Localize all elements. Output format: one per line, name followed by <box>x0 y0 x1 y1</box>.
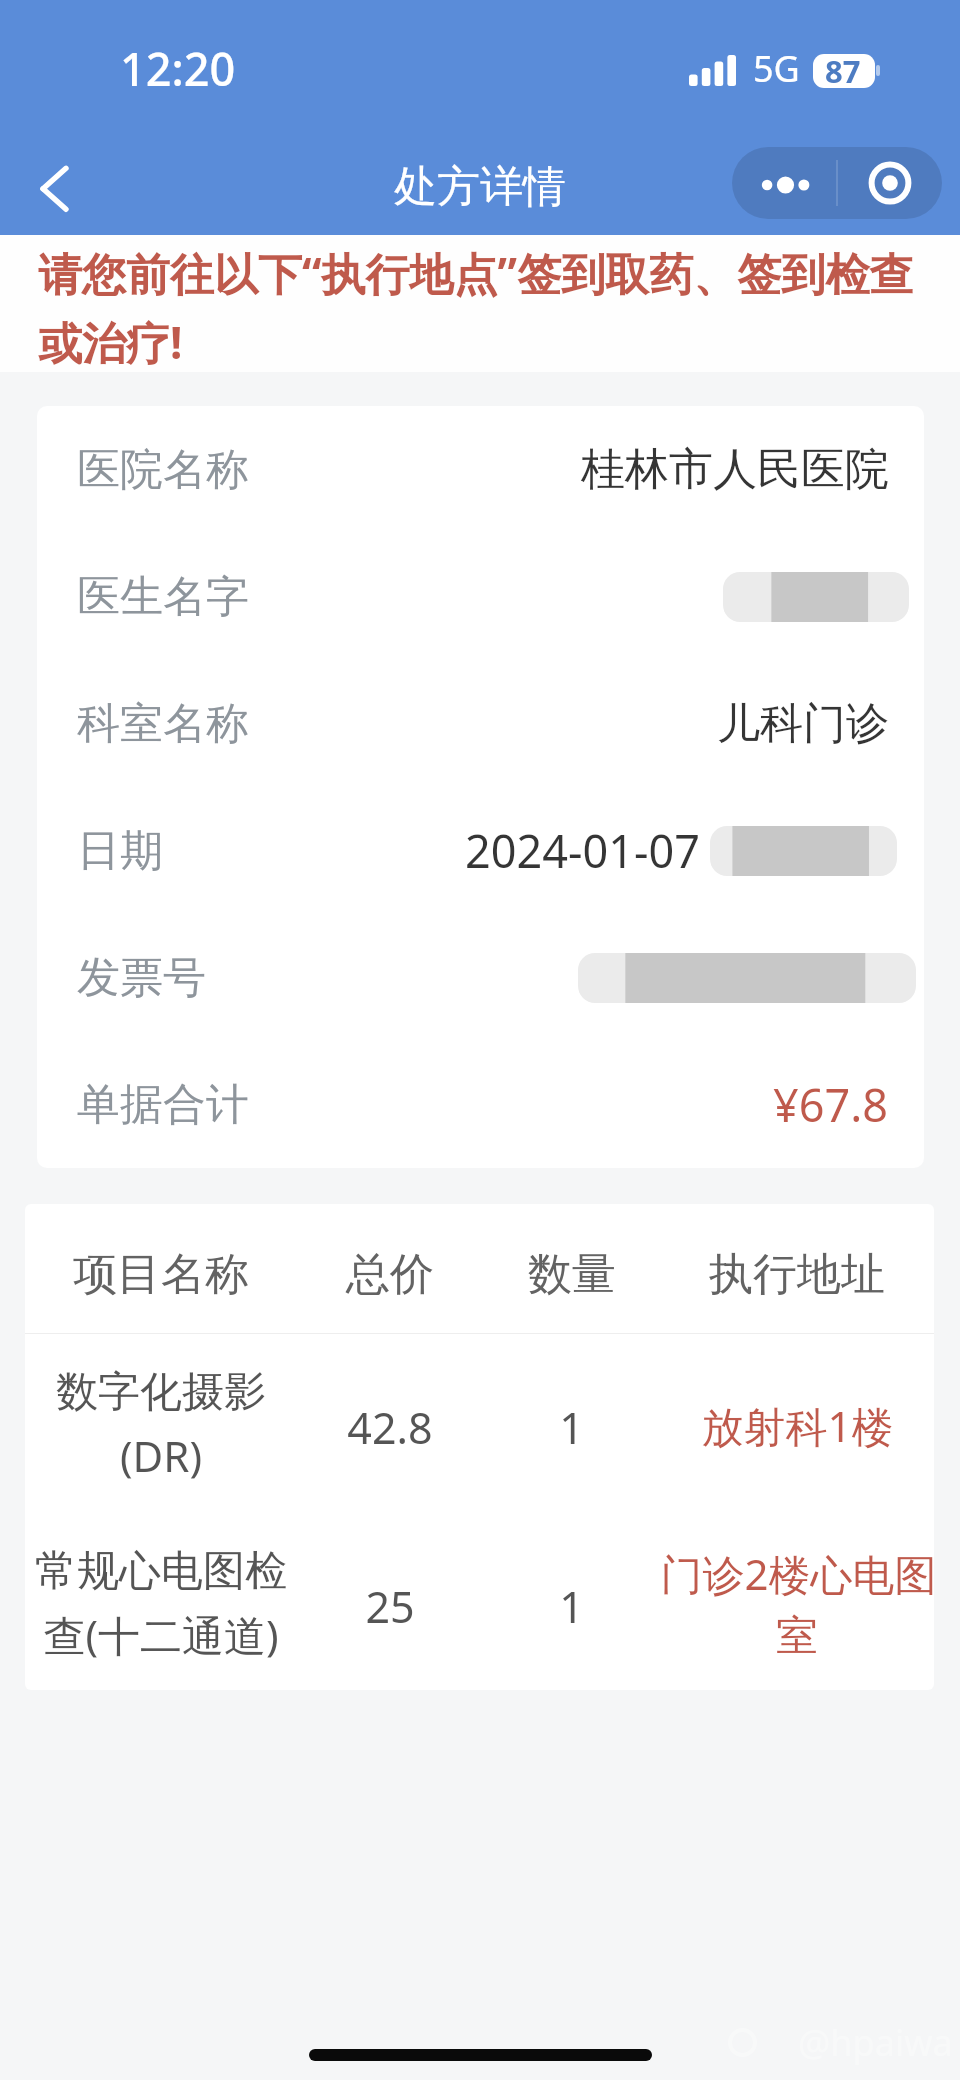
staticText: (DR) <box>120 1427 202 1484</box>
button[interactable]: 数字化摄影 <box>25 1334 934 1518</box>
button[interactable]: 单据合计 <box>37 1041 924 1168</box>
button[interactable]: Back <box>0 138 104 218</box>
staticText: 发票号 <box>77 951 206 1005</box>
staticText: 87 <box>825 50 861 92</box>
button[interactable]: 医院名称 <box>37 406 924 533</box>
staticText: 5G <box>753 44 800 93</box>
staticText: ¥67.8 <box>773 1074 889 1135</box>
button[interactable]: 医生名字 <box>37 533 924 660</box>
staticText: 单据合计 <box>77 1078 249 1132</box>
staticText: 桂林市人民医院 <box>581 442 889 497</box>
button[interactable]: 发票号 <box>37 914 924 1041</box>
staticText: 常规心电图检 <box>35 1545 287 1598</box>
button[interactable]: 日期 <box>37 787 924 914</box>
staticText: 科室名称 <box>77 697 249 751</box>
staticText: 门诊2楼心电图 <box>660 1545 934 1602</box>
staticText: 日期 <box>77 824 163 878</box>
staticText: 42.8 <box>347 1398 433 1457</box>
staticText: 25 <box>365 1577 415 1636</box>
staticText: 请您前往以下“执行地点”签到取药、签到检查或治疗! <box>38 243 952 372</box>
staticText: 室 <box>776 1610 818 1663</box>
staticText: 执行地址 <box>709 1247 885 1302</box>
staticText: 儿科门诊 <box>717 697 889 751</box>
button[interactable]: 科室名称 <box>37 660 924 787</box>
staticText: 1 <box>559 1577 584 1636</box>
staticText: 数字化摄影 <box>56 1366 266 1419</box>
staticText: 处方详情 <box>394 160 566 214</box>
staticText: 数量 <box>528 1247 616 1302</box>
staticText: 医生名字 <box>77 570 249 624</box>
staticText: 2024-01-07 <box>465 820 700 881</box>
staticText: 放射科1楼 <box>701 1397 894 1454</box>
staticText: 12:20 <box>120 38 236 99</box>
staticText: 项目名称 <box>73 1247 249 1302</box>
staticText: 医院名称 <box>77 443 249 497</box>
button[interactable]: More <box>732 147 836 219</box>
staticText: 1 <box>559 1398 584 1457</box>
button[interactable]: Mini program menu <box>838 147 942 219</box>
staticText: 总价 <box>346 1247 434 1302</box>
button[interactable]: 常规心电图检 <box>25 1518 934 1690</box>
staticText: 查(十二通道) <box>43 1606 279 1663</box>
